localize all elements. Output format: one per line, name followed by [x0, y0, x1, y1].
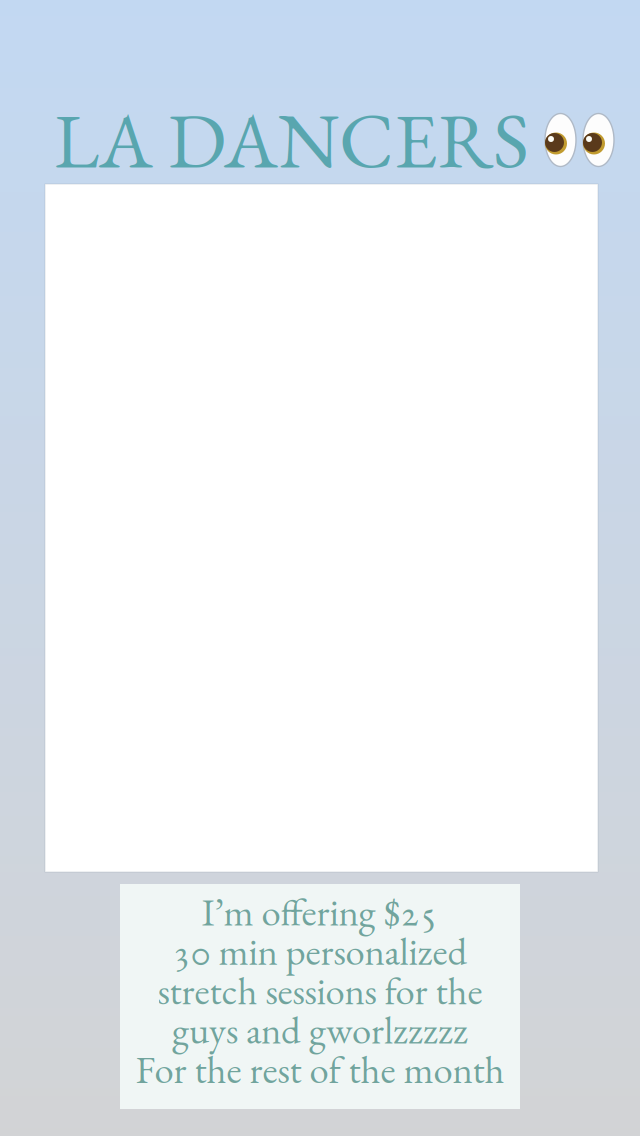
staticText: For the rest of the month: [135, 1049, 504, 1089]
staticText: guys and gworlzzzzz: [172, 1010, 468, 1050]
staticText: 30 min personalized: [172, 931, 467, 971]
button[interactable]: I’m offering $25: [120, 884, 520, 1109]
button[interactable]: Photo: [42, 184, 598, 872]
staticText: LA DANCERS: [54, 89, 529, 190]
staticText: I’m offering $25: [201, 892, 438, 931]
staticText: stretch sessions for the: [157, 971, 482, 1010]
